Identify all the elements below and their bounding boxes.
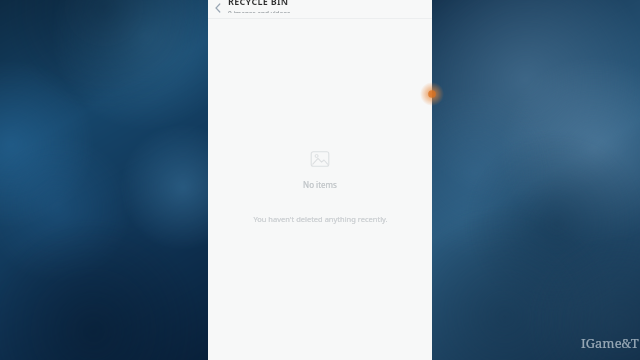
staticText: No items — [303, 179, 337, 190]
staticText: RECYCLE BIN — [228, 0, 289, 7]
staticText: IGame&T — [581, 334, 639, 352]
button[interactable]: Back — [208, 0, 228, 16]
staticText: You haven't deleted anything recently. — [253, 214, 388, 224]
staticText: 0 images and videos — [228, 9, 291, 13]
